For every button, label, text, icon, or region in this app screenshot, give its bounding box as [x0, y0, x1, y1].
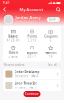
staticText: My Account: [19, 7, 43, 12]
staticText: In transit · Mar 9: [15, 86, 37, 89]
staticText: 6: [50, 39, 52, 42]
staticText: See all ›: [48, 63, 60, 67]
staticText: Coupons: [44, 35, 57, 38]
staticText: 9:41: [3, 1, 10, 5]
staticText: 2 active: [8, 55, 18, 58]
button[interactable]: See all ›: [48, 63, 60, 67]
button[interactable]: Balance: [4, 28, 23, 43]
staticText: Gold ›: [48, 18, 58, 21]
button[interactable]: Settings: [56, 7, 61, 12]
staticText: Balance: [8, 35, 18, 38]
staticText: Orders: [9, 51, 18, 54]
staticText: $128.40: [7, 39, 20, 42]
staticText: Linen Throw Set: [15, 82, 37, 85]
button[interactable]: Jordan Avery: [0, 13, 64, 26]
staticText: 3,210: [27, 39, 36, 42]
button[interactable]: Points: [23, 28, 41, 43]
button[interactable]: Orders: [4, 44, 23, 60]
button[interactable]: Continue: [23, 91, 40, 97]
button[interactable]: Favorites: [41, 44, 60, 60]
staticText: Favorites: [45, 51, 56, 54]
staticText: 24 / 7: [27, 55, 36, 58]
staticText: 18: [49, 55, 53, 58]
button[interactable]: Coupons: [41, 28, 60, 43]
staticText: Delivered · Mar 4: [15, 74, 39, 78]
staticText: ID 8826 4471: [15, 21, 36, 24]
button[interactable]: Linen Throw Set: [3, 80, 61, 91]
staticText: Cedar Desk Lamp: [15, 70, 40, 74]
button[interactable]: Back: [3, 7, 7, 12]
staticText: Continue: [25, 92, 39, 96]
staticText: Points: [27, 35, 36, 38]
staticText: Recent orders: [4, 63, 24, 67]
staticText: Support: [26, 51, 37, 54]
button[interactable]: Support: [23, 44, 41, 60]
button[interactable]: Cedar Desk Lamp: [3, 69, 61, 80]
staticText: Jordan Avery: [15, 15, 40, 20]
